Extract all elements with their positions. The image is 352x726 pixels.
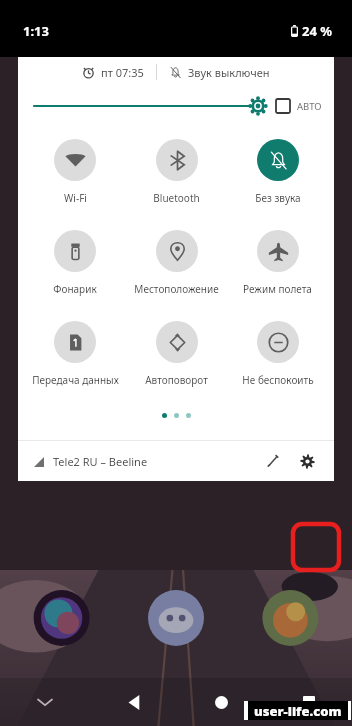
button[interactable]: Не беспокоить bbox=[227, 321, 328, 387]
button[interactable]: Местоположение bbox=[126, 230, 227, 296]
button[interactable]: Recents bbox=[265, 678, 352, 726]
staticText: Звук выключен bbox=[188, 65, 270, 80]
button[interactable]: АВТО bbox=[276, 99, 322, 113]
staticText: 1:13 bbox=[23, 22, 49, 40]
staticText: Фонарик bbox=[53, 282, 97, 296]
button[interactable]: Bluetooth bbox=[126, 139, 227, 205]
button[interactable]: Фонарик bbox=[24, 230, 126, 296]
staticText: Автоповорот bbox=[145, 373, 208, 387]
button[interactable]: Back bbox=[90, 678, 178, 726]
staticText: пт 07:35 bbox=[101, 65, 144, 80]
staticText: Не беспокоить bbox=[242, 373, 314, 387]
staticText: Wi-Fi bbox=[64, 191, 87, 205]
staticText: Без звука bbox=[255, 191, 301, 205]
button[interactable]: пт 07:35 bbox=[80, 65, 146, 80]
button[interactable]: Hide keyboard bbox=[0, 678, 90, 726]
button[interactable]: Tele2 RU – Beeline bbox=[34, 454, 258, 469]
staticText: Передача данных bbox=[32, 373, 119, 387]
button[interactable]: Без звука bbox=[227, 139, 328, 205]
staticText: АВТО bbox=[297, 100, 322, 113]
button[interactable]: Settings bbox=[290, 444, 324, 478]
staticText: 24 % bbox=[302, 22, 332, 40]
staticText: Местоположение bbox=[134, 282, 219, 296]
staticText: Режим полета bbox=[243, 282, 312, 296]
button[interactable]: Звук выключен bbox=[167, 65, 272, 80]
staticText: Bluetooth bbox=[153, 191, 200, 205]
button[interactable] bbox=[34, 93, 268, 119]
staticText: Tele2 RU – Beeline bbox=[53, 454, 148, 469]
button[interactable]: Edit tiles bbox=[258, 446, 288, 476]
button[interactable]: Home bbox=[178, 678, 265, 726]
button[interactable]: Автоповорот bbox=[126, 321, 227, 387]
button[interactable]: Wi-Fi bbox=[24, 139, 126, 205]
button[interactable]: Режим полета bbox=[227, 230, 328, 296]
button[interactable]: Передача данных bbox=[24, 321, 126, 387]
staticText: user-life.com bbox=[254, 702, 342, 720]
